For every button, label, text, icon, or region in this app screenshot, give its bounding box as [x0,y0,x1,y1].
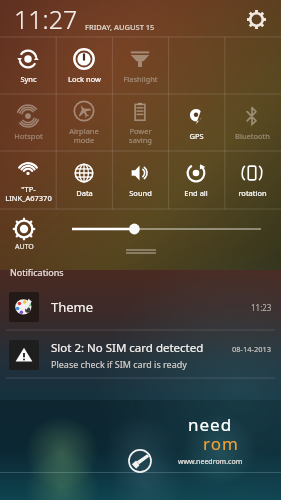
button[interactable]: Bluetooth [224,94,280,151]
staticText: "TP- LINK_A67370 [5,184,52,203]
button[interactable]: Auto brightness [14,219,34,252]
staticText: FRIDAY, AUGUST 15 [85,22,155,32]
staticText: End all [184,188,208,198]
staticText: Please check if SIM card is ready [51,358,187,370]
staticText: GPS [189,131,204,141]
button[interactable]: Slot 2: No SIM card detected [0,331,281,379]
button[interactable]: Hotspot [0,94,56,151]
staticText: Data [76,188,93,198]
staticText: 11:27 [14,2,78,36]
button[interactable]: Power saving [112,94,168,151]
staticText: Flashlight [123,74,158,84]
staticText: Sound [129,188,152,198]
staticText: www.needrom.com [178,457,243,467]
staticText: Notifications [10,266,64,278]
button[interactable]: Theme [0,283,281,331]
button[interactable]: Sound [112,151,168,209]
staticText: Airplane mode [69,126,99,145]
staticText: 08-14-2013 [232,344,272,354]
button[interactable]: Sync [0,37,56,94]
staticText: need [188,413,233,436]
button[interactable]: "TP- LINK_A67370 [0,151,56,209]
button[interactable]: Settings [243,6,269,32]
staticText: AUTO [15,242,34,252]
staticText: Lock now [68,74,101,84]
button[interactable]: rotation [224,151,280,209]
staticText: Bluetooth [235,131,270,141]
staticText: Power saving [129,126,152,145]
button[interactable]: GPS [168,94,224,151]
button[interactable]: Clear all notifications [125,446,155,476]
staticText: Hotspot [14,131,43,141]
button[interactable]: Brightness slider [72,220,261,238]
button[interactable]: Flashlight [112,37,168,94]
staticText: Sync [20,74,37,84]
staticText: rotation [238,188,267,198]
button[interactable]: Lock now [56,37,112,94]
button[interactable]: Data [56,151,112,209]
staticText: 11:23 [251,302,272,313]
staticText: Theme [51,298,251,316]
staticText: rom [203,432,239,455]
button[interactable]: Airplane mode [56,94,112,151]
button[interactable]: End all [168,151,224,209]
staticText: Slot 2: No SIM card detected [51,340,204,356]
